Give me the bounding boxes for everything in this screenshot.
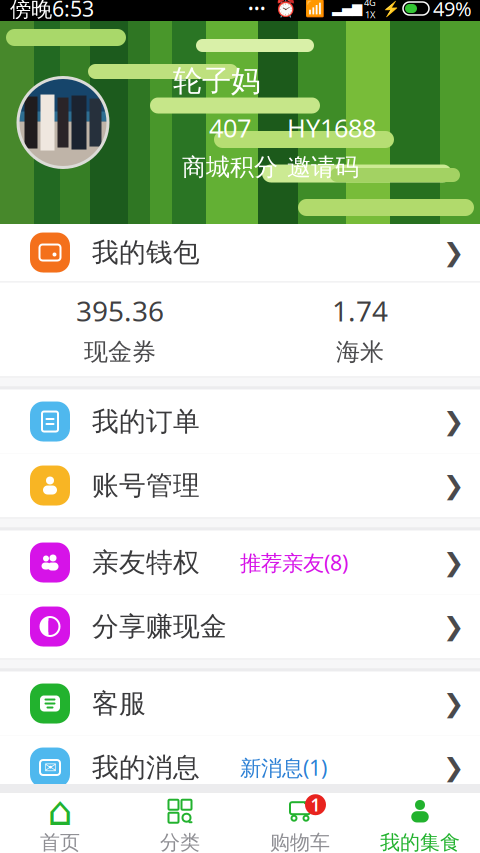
staticText: ▂▄▆ bbox=[332, 1, 362, 16]
staticText: 客服 bbox=[92, 687, 146, 720]
staticText: 新消息(1) bbox=[240, 753, 327, 782]
button[interactable]: 我的钱包 bbox=[0, 223, 480, 281]
staticText: ✉ bbox=[44, 759, 56, 776]
staticText: 我的集食 bbox=[380, 830, 460, 853]
staticText: 我的消息 bbox=[92, 751, 200, 784]
button[interactable]: 账号管理 bbox=[0, 453, 480, 517]
staticText: 395.36 bbox=[76, 292, 164, 329]
staticText: 账号管理 bbox=[92, 469, 200, 502]
staticText: 分类 bbox=[160, 830, 200, 853]
staticText: 1.74 bbox=[332, 292, 388, 329]
staticText: ❯ bbox=[443, 471, 464, 500]
staticText: ❯ bbox=[443, 753, 464, 782]
staticText: 1X bbox=[365, 8, 375, 21]
staticText: 1 bbox=[310, 793, 320, 816]
staticText: 推荐亲友(8) bbox=[240, 548, 348, 577]
staticText: 我的订单 bbox=[92, 405, 200, 438]
staticText: ❯ bbox=[443, 548, 464, 577]
staticText: ⚡ bbox=[382, 0, 400, 17]
button[interactable]: ⌂ bbox=[0, 792, 120, 853]
staticText: ❯ bbox=[443, 612, 464, 641]
staticText: 海米 bbox=[336, 337, 384, 367]
button[interactable]: 我的集食 bbox=[360, 792, 480, 853]
button[interactable]: 分享赚现金 bbox=[0, 594, 480, 658]
staticText: ❯ bbox=[443, 238, 464, 267]
staticText: 购物车 bbox=[270, 830, 330, 853]
button[interactable]: 分类 bbox=[120, 792, 240, 853]
button[interactable]: ✉ bbox=[0, 735, 480, 799]
staticText: 📶 bbox=[305, 0, 325, 18]
staticText: 我的钱包 bbox=[92, 236, 200, 269]
staticText: 4G bbox=[364, 0, 376, 8]
staticText: 亲友特权 bbox=[92, 546, 200, 579]
staticText: 轮子妈 bbox=[173, 63, 260, 99]
button[interactable]: 客服 bbox=[0, 671, 480, 735]
staticText: 傍晚6:53 bbox=[10, 0, 94, 23]
button[interactable]: Profile photo bbox=[18, 77, 108, 167]
staticText: 现金券 bbox=[84, 337, 156, 367]
staticText: 49% bbox=[433, 0, 472, 22]
staticText: ❯ bbox=[443, 689, 464, 718]
staticText: 商城积分 bbox=[182, 153, 278, 182]
staticText: ⌂ bbox=[47, 788, 72, 834]
staticText: ⏰ bbox=[275, 0, 297, 18]
staticText: ••• bbox=[248, 0, 266, 18]
staticText: 首页 bbox=[40, 830, 80, 853]
button[interactable]: 1 bbox=[240, 792, 360, 853]
staticText: 407 bbox=[209, 111, 251, 145]
staticText: 邀请码 bbox=[287, 153, 359, 182]
staticText: 分享赚现金 bbox=[92, 610, 227, 643]
staticText: HY1688 bbox=[287, 111, 376, 145]
button[interactable]: 我的订单 bbox=[0, 389, 480, 453]
staticText: ❯ bbox=[443, 407, 464, 436]
button[interactable]: 395.36 bbox=[0, 282, 480, 376]
button[interactable]: 亲友特权 bbox=[0, 530, 480, 594]
